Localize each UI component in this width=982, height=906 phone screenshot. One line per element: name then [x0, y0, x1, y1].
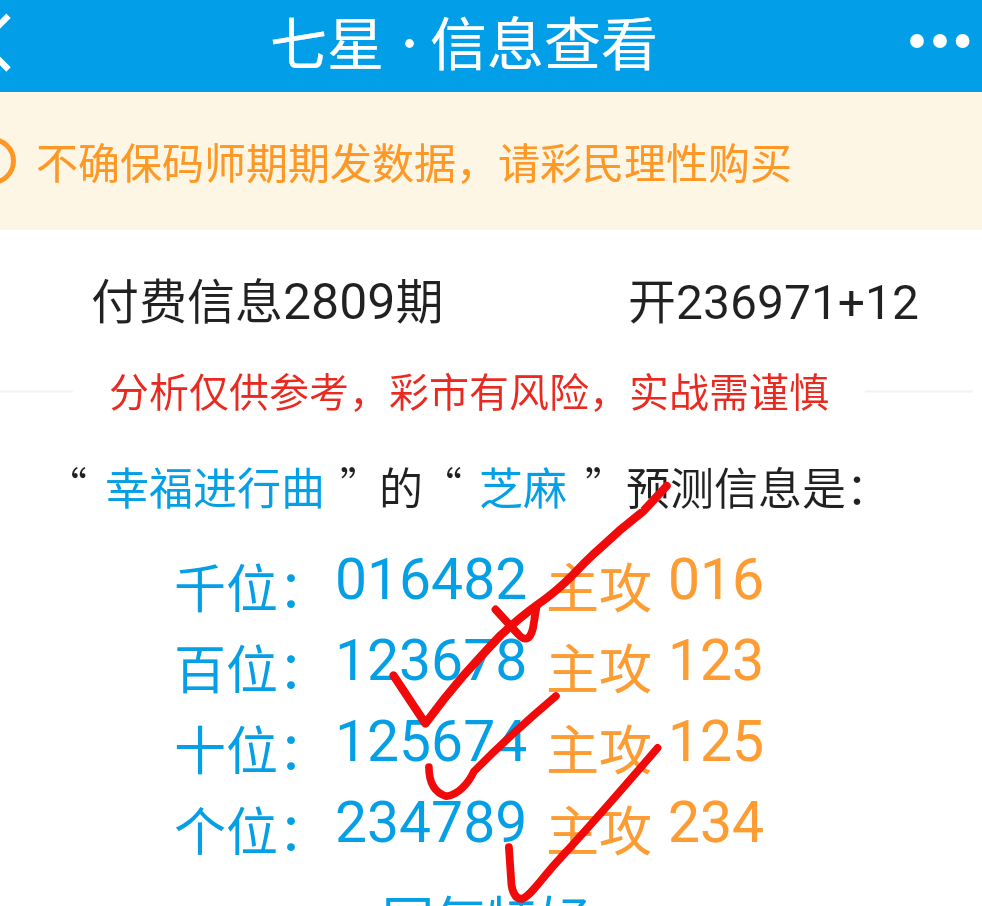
staticText: 十位： — [174, 710, 331, 785]
staticText: 预测信息是： — [626, 454, 890, 518]
staticText: 主攻 — [546, 547, 652, 624]
staticText: 七星 — [270, 0, 384, 82]
staticText: 主攻 — [546, 628, 652, 705]
button[interactable]: Back — [0, 0, 52, 91]
staticText: “ — [422, 455, 462, 513]
staticText: 234789 — [335, 789, 528, 856]
button[interactable]: 回气特好 — [0, 880, 982, 906]
staticText: 开236971+12 — [628, 263, 920, 333]
button[interactable]: 十位： — [0, 710, 982, 791]
staticText: ” — [340, 455, 380, 513]
staticText: 123 — [668, 627, 765, 694]
staticText: 芝麻 — [479, 454, 567, 518]
staticText: “ — [47, 455, 87, 513]
staticText: 主攻 — [546, 709, 652, 786]
button[interactable]: More options — [890, 6, 982, 76]
staticText: 125674 — [335, 708, 528, 775]
staticText: 016 — [668, 546, 765, 613]
button[interactable]: 千位： — [0, 548, 982, 629]
staticText: 个位： — [174, 791, 331, 866]
staticText: 回气特好 — [382, 880, 591, 906]
staticText: 不确保码师期期发数据，请彩民理性购买 — [36, 130, 793, 191]
staticText: ” — [585, 455, 625, 513]
button[interactable]: 百位： — [0, 629, 982, 710]
staticText: 主攻 — [546, 790, 652, 867]
staticText: 幸福进行曲 — [105, 454, 325, 518]
staticText: 分析仅供参考，彩市有风险，实战需谨慎 — [109, 361, 829, 419]
staticText: 125 — [668, 708, 765, 775]
button[interactable]: 不确保码师期期发数据，请彩民理性购买 — [0, 92, 982, 230]
button[interactable]: 个位： — [0, 791, 982, 872]
staticText: 百位： — [174, 629, 331, 704]
staticText: 信息查看 — [430, 0, 658, 82]
staticText: 123678 — [335, 627, 528, 694]
staticText: 016482 — [335, 546, 528, 613]
staticText: 234 — [668, 789, 765, 856]
staticText: 付费信息2809期 — [91, 263, 444, 333]
staticText: 的 — [379, 454, 423, 518]
staticText: 千位： — [174, 548, 331, 623]
